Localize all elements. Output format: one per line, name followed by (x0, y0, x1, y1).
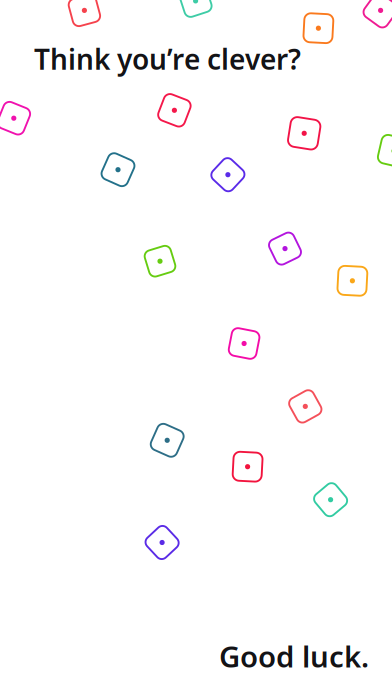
staticText: Good luck. (219, 636, 369, 675)
staticText: Think you’re clever? (34, 40, 301, 78)
